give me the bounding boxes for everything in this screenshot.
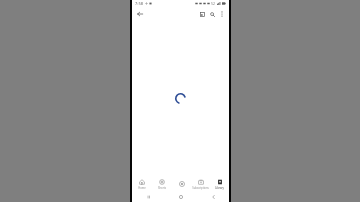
button[interactable]: Back: [135, 9, 145, 19]
button[interactable]: Library: [210, 176, 229, 192]
button[interactable]: Back: [197, 192, 229, 202]
staticText: Home: [138, 186, 146, 190]
button[interactable]: Create: [172, 176, 191, 192]
button[interactable]: Search: [207, 9, 217, 19]
button[interactable]: More options: [217, 9, 226, 18]
button[interactable]: Cast: [197, 9, 207, 19]
staticText: Shorts: [158, 186, 166, 190]
staticText: 52: [211, 1, 216, 6]
staticText: Subscriptions: [192, 186, 209, 190]
staticText: 7:58: [135, 1, 143, 6]
button[interactable]: Home: [132, 176, 152, 192]
staticText: Library: [215, 186, 224, 190]
button[interactable]: Subscriptions: [191, 176, 210, 192]
button[interactable]: Shorts: [152, 176, 172, 192]
button[interactable]: Home: [165, 192, 197, 202]
button[interactable]: Recents: [132, 192, 165, 202]
